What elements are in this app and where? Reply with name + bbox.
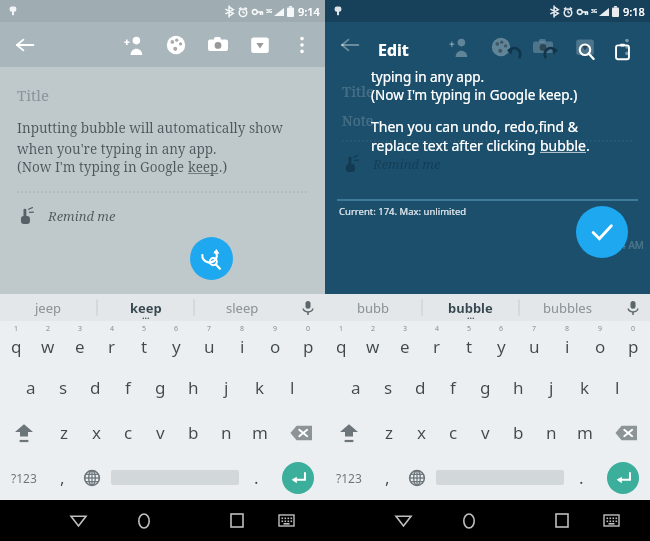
button[interactable]: 9 xyxy=(259,321,292,365)
button[interactable]: Switch keyboard xyxy=(588,500,634,541)
button[interactable]: Space xyxy=(432,455,567,500)
button[interactable]: 7 xyxy=(193,321,226,365)
button[interactable]: 3 xyxy=(64,321,96,365)
button[interactable]: l xyxy=(601,365,634,410)
button[interactable]: . xyxy=(567,455,595,500)
button[interactable]: Enter xyxy=(270,455,325,500)
button[interactable]: a xyxy=(340,365,372,410)
button[interactable]: Undo xyxy=(496,33,532,69)
button[interactable]: More options xyxy=(281,24,323,66)
button[interactable]: ?123 xyxy=(325,455,373,500)
button[interactable]: v xyxy=(469,410,502,455)
button[interactable]: k xyxy=(568,365,601,410)
button[interactable]: m xyxy=(243,410,276,455)
button[interactable]: Voice input xyxy=(291,294,325,321)
button[interactable]: 1 xyxy=(325,321,357,365)
button[interactable]: b xyxy=(177,410,210,455)
button[interactable]: 2 xyxy=(357,321,389,365)
button[interactable]: Shift xyxy=(325,410,373,455)
button[interactable]: f xyxy=(111,365,144,410)
button[interactable]: f xyxy=(436,365,469,410)
staticText: 8 xyxy=(565,324,570,334)
staticText: k xyxy=(255,376,265,399)
button[interactable]: h xyxy=(502,365,535,410)
button[interactable]: Back xyxy=(45,500,111,541)
button[interactable]: k xyxy=(243,365,276,410)
button[interactable]: c xyxy=(112,410,144,455)
button[interactable]: d xyxy=(404,365,436,410)
button[interactable]: Done xyxy=(576,206,628,258)
button[interactable]: bubbles xyxy=(519,294,616,321)
button[interactable]: Back xyxy=(370,500,436,541)
button[interactable]: 4 xyxy=(421,321,453,365)
button[interactable]: . xyxy=(242,455,270,500)
button[interactable]: j xyxy=(210,365,243,410)
button[interactable]: 8 xyxy=(226,321,259,365)
button[interactable]: 5 xyxy=(128,321,160,365)
button[interactable]: c xyxy=(437,410,469,455)
button[interactable]: m xyxy=(568,410,601,455)
button[interactable]: Paste xyxy=(604,33,640,69)
button[interactable]: Recents xyxy=(535,500,588,541)
button[interactable]: s xyxy=(372,365,404,410)
button[interactable]: j xyxy=(535,365,568,410)
button[interactable]: Colour palette xyxy=(155,24,197,66)
button[interactable]: , xyxy=(48,455,76,500)
button[interactable]: 7 xyxy=(518,321,551,365)
button[interactable]: Add person xyxy=(113,24,155,66)
button[interactable]: Recents xyxy=(210,500,263,541)
button[interactable]: keep xyxy=(97,294,194,321)
button[interactable]: Enter xyxy=(595,455,650,500)
button[interactable]: 8 xyxy=(551,321,584,365)
button[interactable]: 5 xyxy=(453,321,485,365)
button[interactable]: Redo xyxy=(532,33,568,69)
button[interactable]: 0 xyxy=(292,321,325,365)
button[interactable]: , xyxy=(373,455,401,500)
button[interactable]: Change language xyxy=(401,455,432,500)
button[interactable]: n xyxy=(535,410,568,455)
button[interactable]: jeep xyxy=(0,294,97,321)
button[interactable]: s xyxy=(47,365,79,410)
button[interactable]: Space xyxy=(107,455,242,500)
button[interactable]: z xyxy=(373,410,405,455)
button[interactable]: 0 xyxy=(617,321,650,365)
button[interactable]: z xyxy=(48,410,80,455)
button[interactable]: d xyxy=(79,365,111,410)
button[interactable]: 6 xyxy=(485,321,518,365)
button[interactable]: bubble xyxy=(422,294,519,321)
button[interactable]: 1 xyxy=(0,321,32,365)
button[interactable]: Camera xyxy=(197,24,239,66)
button[interactable]: x xyxy=(405,410,437,455)
button[interactable]: g xyxy=(144,365,177,410)
button[interactable]: Back xyxy=(5,25,45,65)
button[interactable]: bubb xyxy=(325,294,422,321)
button[interactable]: Remind me xyxy=(17,207,116,225)
button[interactable]: b xyxy=(502,410,535,455)
button[interactable]: 9 xyxy=(584,321,617,365)
button[interactable]: Archive xyxy=(239,24,281,66)
button[interactable]: Backspace xyxy=(276,410,325,455)
staticText: Inputting bubble will automatically show… xyxy=(17,119,284,158)
button[interactable]: Voice input xyxy=(616,294,650,321)
button[interactable]: Switch keyboard xyxy=(263,500,309,541)
button[interactable]: ?123 xyxy=(0,455,48,500)
button[interactable]: g xyxy=(469,365,502,410)
button[interactable]: Find and replace xyxy=(190,237,233,280)
button[interactable]: x xyxy=(80,410,112,455)
button[interactable]: Search xyxy=(568,33,604,69)
button[interactable]: Backspace xyxy=(601,410,650,455)
button[interactable]: v xyxy=(144,410,177,455)
button[interactable]: Home xyxy=(111,500,177,541)
button[interactable]: n xyxy=(210,410,243,455)
button[interactable]: 2 xyxy=(32,321,64,365)
button[interactable]: h xyxy=(177,365,210,410)
button[interactable]: Shift xyxy=(0,410,48,455)
button[interactable]: 4 xyxy=(96,321,128,365)
button[interactable]: l xyxy=(276,365,309,410)
button[interactable]: 3 xyxy=(389,321,421,365)
button[interactable]: Change language xyxy=(76,455,107,500)
button[interactable]: a xyxy=(15,365,47,410)
button[interactable]: Home xyxy=(436,500,502,541)
button[interactable]: 6 xyxy=(160,321,193,365)
button[interactable]: sleep xyxy=(194,294,291,321)
